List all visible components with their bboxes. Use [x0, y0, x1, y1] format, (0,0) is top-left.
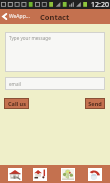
button[interactable]: Contact us [88, 168, 102, 181]
button[interactable]: Home [8, 168, 22, 181]
button[interactable]: Garden [61, 168, 75, 181]
staticText: Type your message [9, 35, 51, 41]
button[interactable]: Type your message [5, 32, 105, 72]
staticText: 12:20 [91, 0, 109, 9]
staticText: WeApp... [9, 13, 30, 20]
button[interactable]: Send [85, 98, 105, 109]
staticText: Contact [40, 12, 70, 22]
button[interactable]: Back [0, 13, 33, 20]
staticText: Send [88, 100, 102, 107]
button[interactable]: Call us [4, 98, 29, 109]
button[interactable]: email [5, 77, 105, 90]
staticText: email [9, 81, 21, 87]
other: Back [2, 13, 7, 20]
staticText: Call us [8, 100, 26, 107]
button[interactable]: Repairs [33, 168, 47, 181]
